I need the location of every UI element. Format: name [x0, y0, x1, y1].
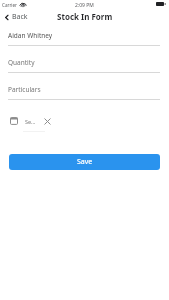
button[interactable]: Select date: [6, 114, 22, 128]
staticText: Quantity: [8, 58, 35, 67]
staticText: Stock In Form: [57, 11, 113, 22]
staticText: Aidan Whitney: [8, 31, 53, 40]
staticText: Back: [12, 12, 28, 22]
button[interactable]: Clear date: [41, 115, 53, 127]
button[interactable]: [8, 52, 160, 73]
staticText: Carrier: [2, 2, 17, 8]
staticText: Se…: [25, 118, 36, 125]
button[interactable]: [8, 79, 160, 100]
button[interactable]: [8, 25, 160, 46]
button[interactable]: Back: [4, 12, 28, 22]
staticText: Save: [77, 157, 93, 167]
staticText: Particulars: [8, 85, 41, 94]
staticText: 2:09 PM: [75, 2, 94, 9]
button[interactable]: Save: [9, 154, 160, 170]
